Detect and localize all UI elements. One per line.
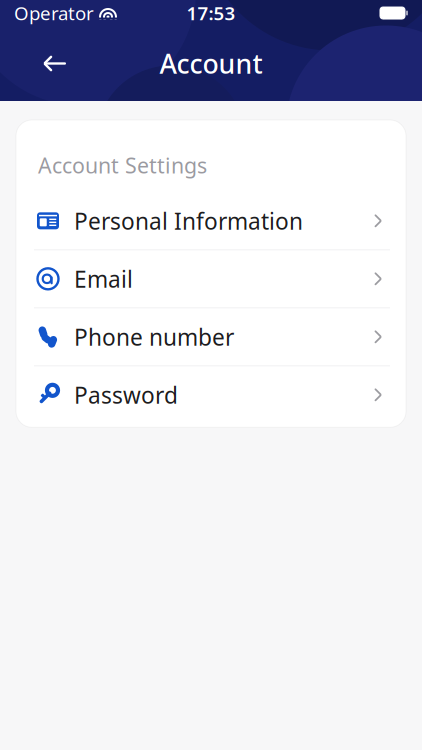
staticText: Email (74, 264, 133, 294)
staticText: Operator (14, 1, 94, 25)
staticText: Account Settings (38, 151, 207, 179)
button[interactable]: Password (16, 366, 406, 423)
staticText: 17:53 (186, 1, 235, 25)
staticText: Phone number (74, 322, 234, 352)
button[interactable]: Phone number (16, 308, 406, 365)
staticText: Account (159, 46, 262, 81)
button[interactable]: Email (16, 250, 406, 307)
staticText: Password (74, 380, 178, 410)
button[interactable]: Personal Information (16, 192, 406, 249)
staticText: Personal Information (74, 206, 303, 236)
button[interactable]: Back (28, 36, 82, 90)
